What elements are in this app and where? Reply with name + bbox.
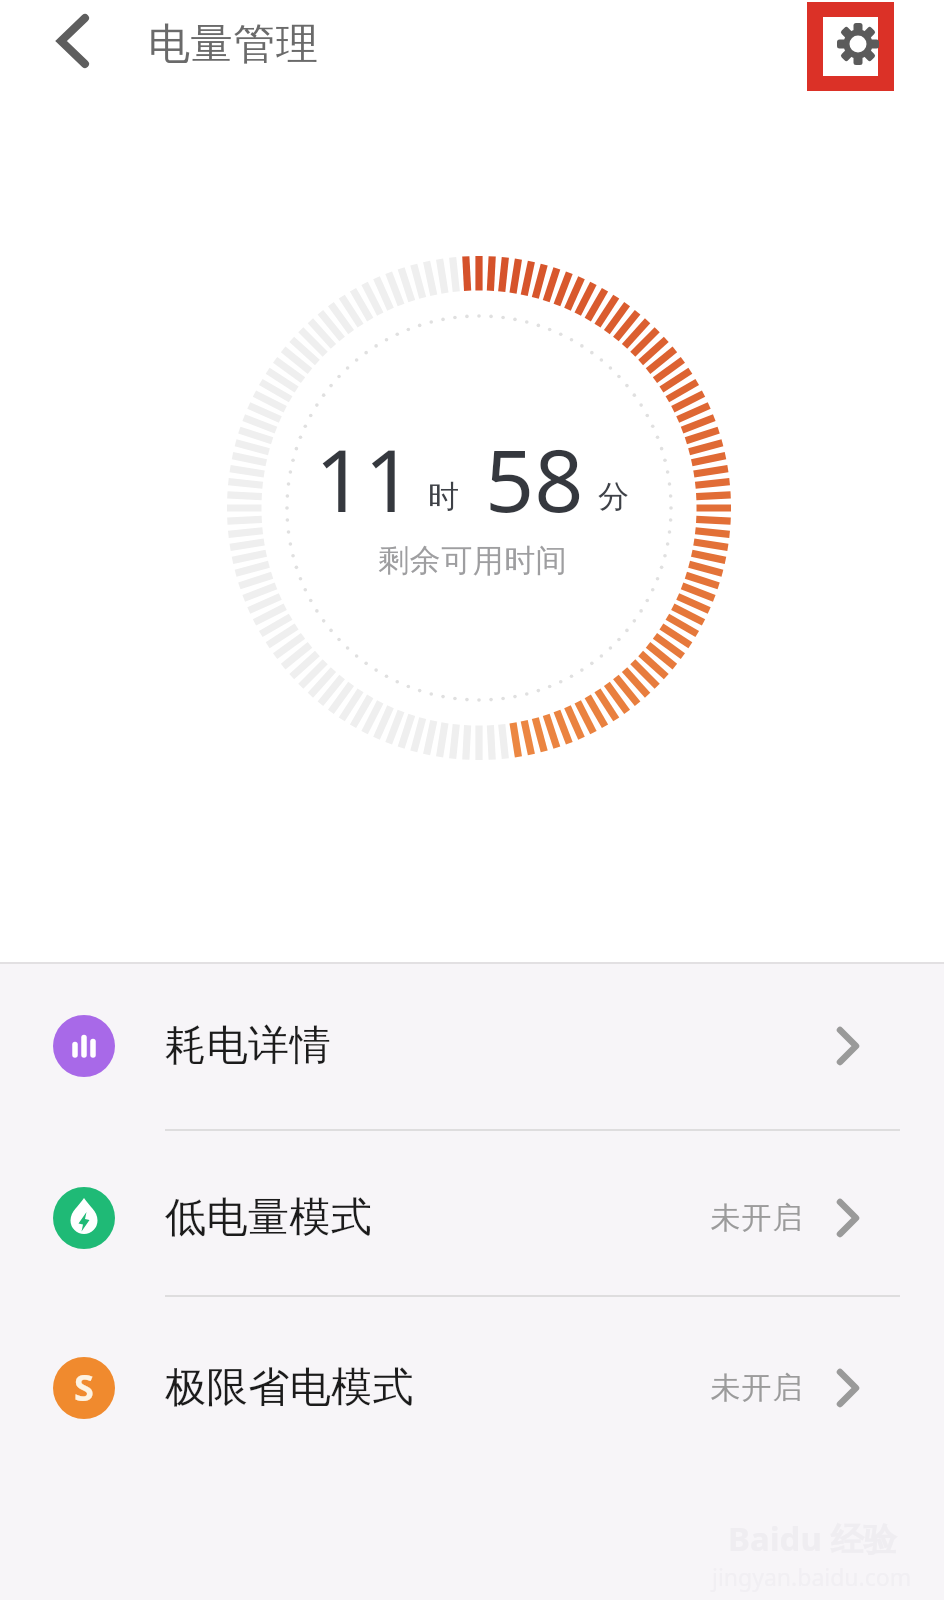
staticText: 未开启 [710,1369,803,1407]
staticText: 11 [315,420,414,522]
staticText: 未开启 [710,1199,803,1237]
staticText: Baidu 经验 [728,1516,897,1561]
button[interactable]: 低电量模式 [0,1136,944,1300]
staticText: 剩余可用时间 [378,541,567,580]
button[interactable] [50,9,98,73]
staticText: 极限省电模式 [165,1362,414,1414]
staticText: 低电量模式 [165,1192,373,1244]
staticText: 58 [485,420,584,522]
button[interactable]: S [0,1306,944,1470]
staticText: 分 [598,477,629,516]
staticText: 耗电详情 [165,1020,331,1072]
staticText: 时 [428,477,459,516]
staticText: S [74,1363,94,1412]
staticText: 电量管理 [148,18,318,71]
button[interactable]: 耗电详情 [0,962,944,1130]
button[interactable] [807,2,894,91]
